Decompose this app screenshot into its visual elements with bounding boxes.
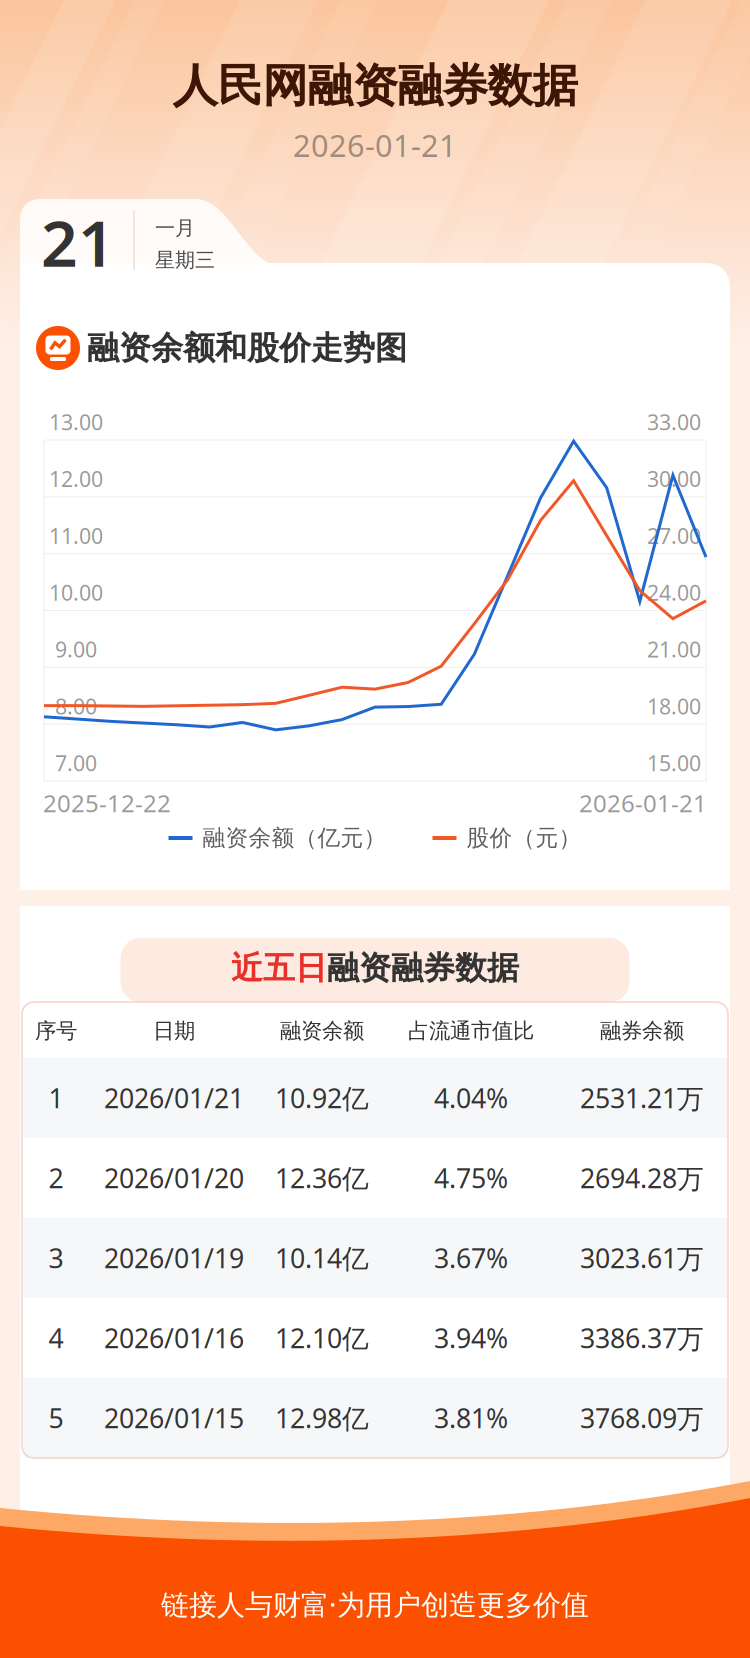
staticText: 10.92亿 (275, 1080, 369, 1116)
staticText: 2 (48, 1160, 63, 1196)
staticText: 序号 (35, 1018, 77, 1044)
staticText: 日期 (153, 1018, 195, 1044)
staticText: 5 (48, 1400, 63, 1436)
staticText: 10.14亿 (275, 1240, 369, 1276)
staticText: 4 (48, 1320, 63, 1356)
staticText: 12.36亿 (275, 1160, 369, 1196)
staticText: 11.00 (49, 521, 103, 550)
staticText: 2026-01-21 (579, 787, 707, 819)
staticText: 3.94% (434, 1320, 508, 1356)
staticText: 融资余额 (280, 1018, 364, 1044)
staticText: 15.00 (647, 749, 701, 777)
staticText: 18.00 (647, 692, 701, 720)
staticText: 12.00 (49, 465, 103, 493)
staticText: 融资余额（亿元） (202, 824, 386, 852)
staticText: 3 (48, 1240, 63, 1276)
staticText: 3.81% (434, 1400, 508, 1436)
staticText: 21.00 (647, 635, 701, 663)
staticText: 2025-12-22 (43, 787, 171, 819)
staticText: 2026/01/19 (104, 1240, 244, 1276)
staticText: 近五日 (231, 948, 327, 988)
staticText: 30.00 (647, 465, 701, 493)
staticText: 融资融券数据 (327, 948, 519, 988)
staticText: 融资余额和股价走势图 (87, 328, 407, 368)
staticText: 9.00 (55, 635, 97, 663)
staticText: 2531.21万 (580, 1080, 704, 1116)
staticText: 2694.28万 (580, 1160, 704, 1196)
staticText: 2026-01-21 (293, 125, 457, 165)
staticText: 人民网融资融券数据 (172, 58, 577, 114)
staticText: 3023.61万 (580, 1240, 704, 1276)
staticText: 12.10亿 (275, 1320, 369, 1356)
staticText: 2026/01/16 (104, 1320, 244, 1356)
staticText: 2026/01/21 (104, 1080, 244, 1116)
staticText: 10.00 (49, 578, 103, 607)
staticText: 股价（元） (466, 824, 581, 852)
staticText: 12.98亿 (275, 1400, 369, 1436)
staticText: 4.75% (434, 1160, 508, 1196)
staticText: 24.00 (647, 578, 701, 607)
staticText: 33.00 (647, 408, 701, 436)
staticText: 3386.37万 (580, 1320, 704, 1356)
staticText: 21 (41, 199, 115, 284)
staticText: 1 (48, 1080, 63, 1116)
staticText: 3768.09万 (580, 1400, 704, 1436)
staticText: 融券余额 (600, 1018, 684, 1044)
staticText: 7.00 (55, 749, 97, 777)
staticText: 27.00 (647, 521, 701, 550)
staticText: 13.00 (49, 408, 103, 436)
staticText: 占流通市值比 (408, 1018, 534, 1044)
staticText: 8.00 (55, 692, 97, 720)
staticText: 星期三 (155, 248, 215, 272)
staticText: 4.04% (434, 1080, 508, 1116)
staticText: 一月 (155, 216, 195, 240)
staticText: 链接人与财富·为用户创造更多价值 (161, 1585, 589, 1623)
staticText: 3.67% (434, 1240, 508, 1276)
staticText: 2026/01/20 (104, 1160, 244, 1196)
staticText: 2026/01/15 (104, 1400, 244, 1436)
